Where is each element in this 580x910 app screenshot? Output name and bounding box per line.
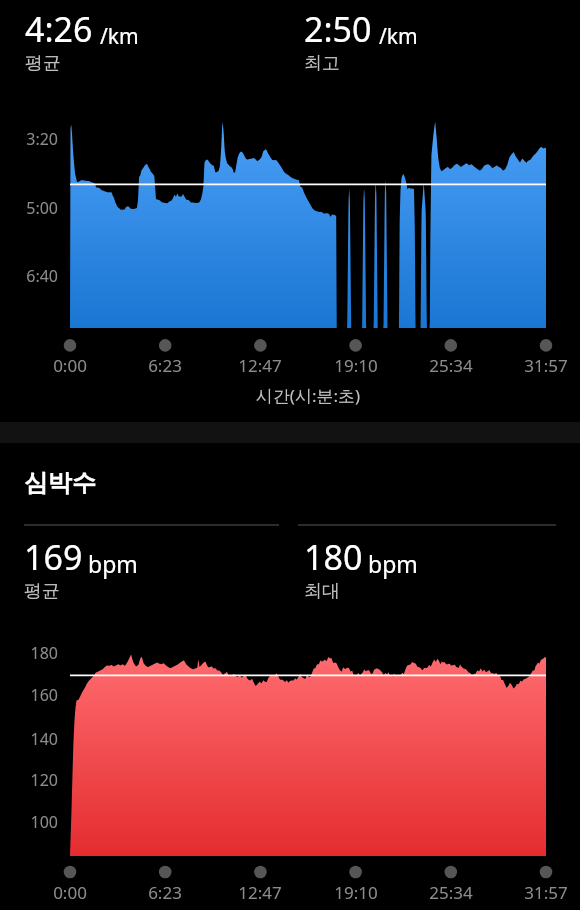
staticText: 180 (0, 642, 58, 664)
staticText: 4:26 (25, 6, 93, 52)
staticText: 0:00 (30, 354, 110, 377)
staticText: 6:23 (125, 881, 205, 904)
staticText: /km (100, 22, 139, 51)
staticText: 100 (0, 811, 58, 833)
staticText: 180 (304, 534, 363, 580)
staticText: 최고 (304, 52, 340, 75)
staticText: 120 (0, 769, 58, 791)
staticText: 6:40 (0, 265, 58, 287)
staticText: 6:23 (125, 354, 205, 377)
staticText: 19:10 (316, 881, 396, 904)
staticText: 2:50 (304, 6, 372, 52)
staticText: bpm (368, 548, 418, 579)
staticText: 심박수 (24, 468, 96, 498)
staticText: 169 (24, 534, 83, 580)
staticText: 140 (0, 728, 58, 750)
staticText: 31:57 (506, 354, 580, 377)
staticText: 12:47 (220, 881, 300, 904)
staticText: 0:00 (30, 881, 110, 904)
staticText: 평균 (25, 52, 61, 75)
staticText: 25:34 (411, 354, 491, 377)
staticText: 12:47 (220, 354, 300, 377)
staticText: /km (379, 22, 418, 51)
staticText: 3:20 (0, 128, 58, 150)
staticText: 160 (0, 684, 58, 706)
staticText: 19:10 (316, 354, 396, 377)
staticText: 최대 (304, 580, 340, 603)
staticText: 평균 (24, 580, 60, 603)
staticText: 31:57 (506, 881, 580, 904)
staticText: 5:00 (0, 197, 58, 219)
staticText: 25:34 (411, 881, 491, 904)
staticText: bpm (88, 548, 138, 579)
staticText: 시간(시:분:초) (70, 384, 546, 407)
